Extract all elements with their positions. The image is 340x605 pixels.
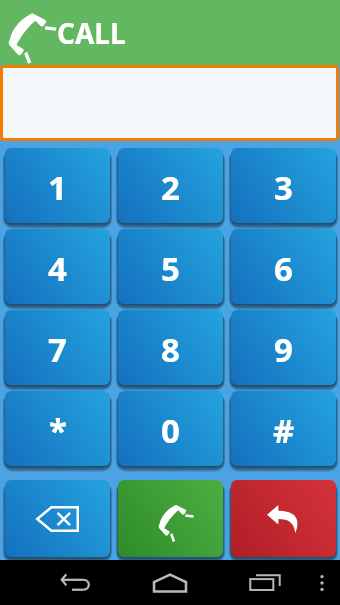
button[interactable]: 4	[5, 229, 110, 304]
staticText: CALL	[57, 14, 126, 52]
button[interactable]: 0	[118, 391, 223, 466]
button[interactable]: 7	[5, 310, 110, 385]
button[interactable]: 5	[118, 229, 223, 304]
staticText: 5	[161, 246, 180, 291]
staticText: 0	[161, 408, 180, 453]
button[interactable]: 6	[231, 229, 336, 304]
staticText: 3	[274, 165, 293, 210]
button[interactable]: Back	[52, 566, 98, 599]
other: Phone	[1, 8, 50, 57]
staticText: 9	[274, 327, 293, 372]
staticText: 8	[161, 327, 180, 372]
button[interactable]: 8	[118, 310, 223, 385]
staticText: 1	[48, 165, 67, 210]
button[interactable]: #	[231, 391, 336, 466]
staticText: 7	[48, 327, 67, 372]
button[interactable]: More options	[308, 566, 335, 599]
staticText: 2	[161, 165, 180, 210]
button[interactable]: Back	[231, 480, 336, 557]
staticText: 6	[274, 246, 293, 291]
button[interactable]: Home	[147, 566, 193, 599]
button[interactable]: 1	[5, 148, 110, 223]
button[interactable]: 3	[231, 148, 336, 223]
button[interactable]: 9	[231, 310, 336, 385]
staticText: *	[49, 408, 67, 453]
button[interactable]: 2	[118, 148, 223, 223]
button[interactable]: Call	[118, 480, 223, 557]
staticText: #	[273, 408, 295, 453]
staticText: 4	[48, 246, 67, 291]
button[interactable]: *	[5, 391, 110, 466]
button[interactable]: Backspace	[5, 480, 110, 557]
button[interactable]: Recent apps	[242, 566, 288, 599]
